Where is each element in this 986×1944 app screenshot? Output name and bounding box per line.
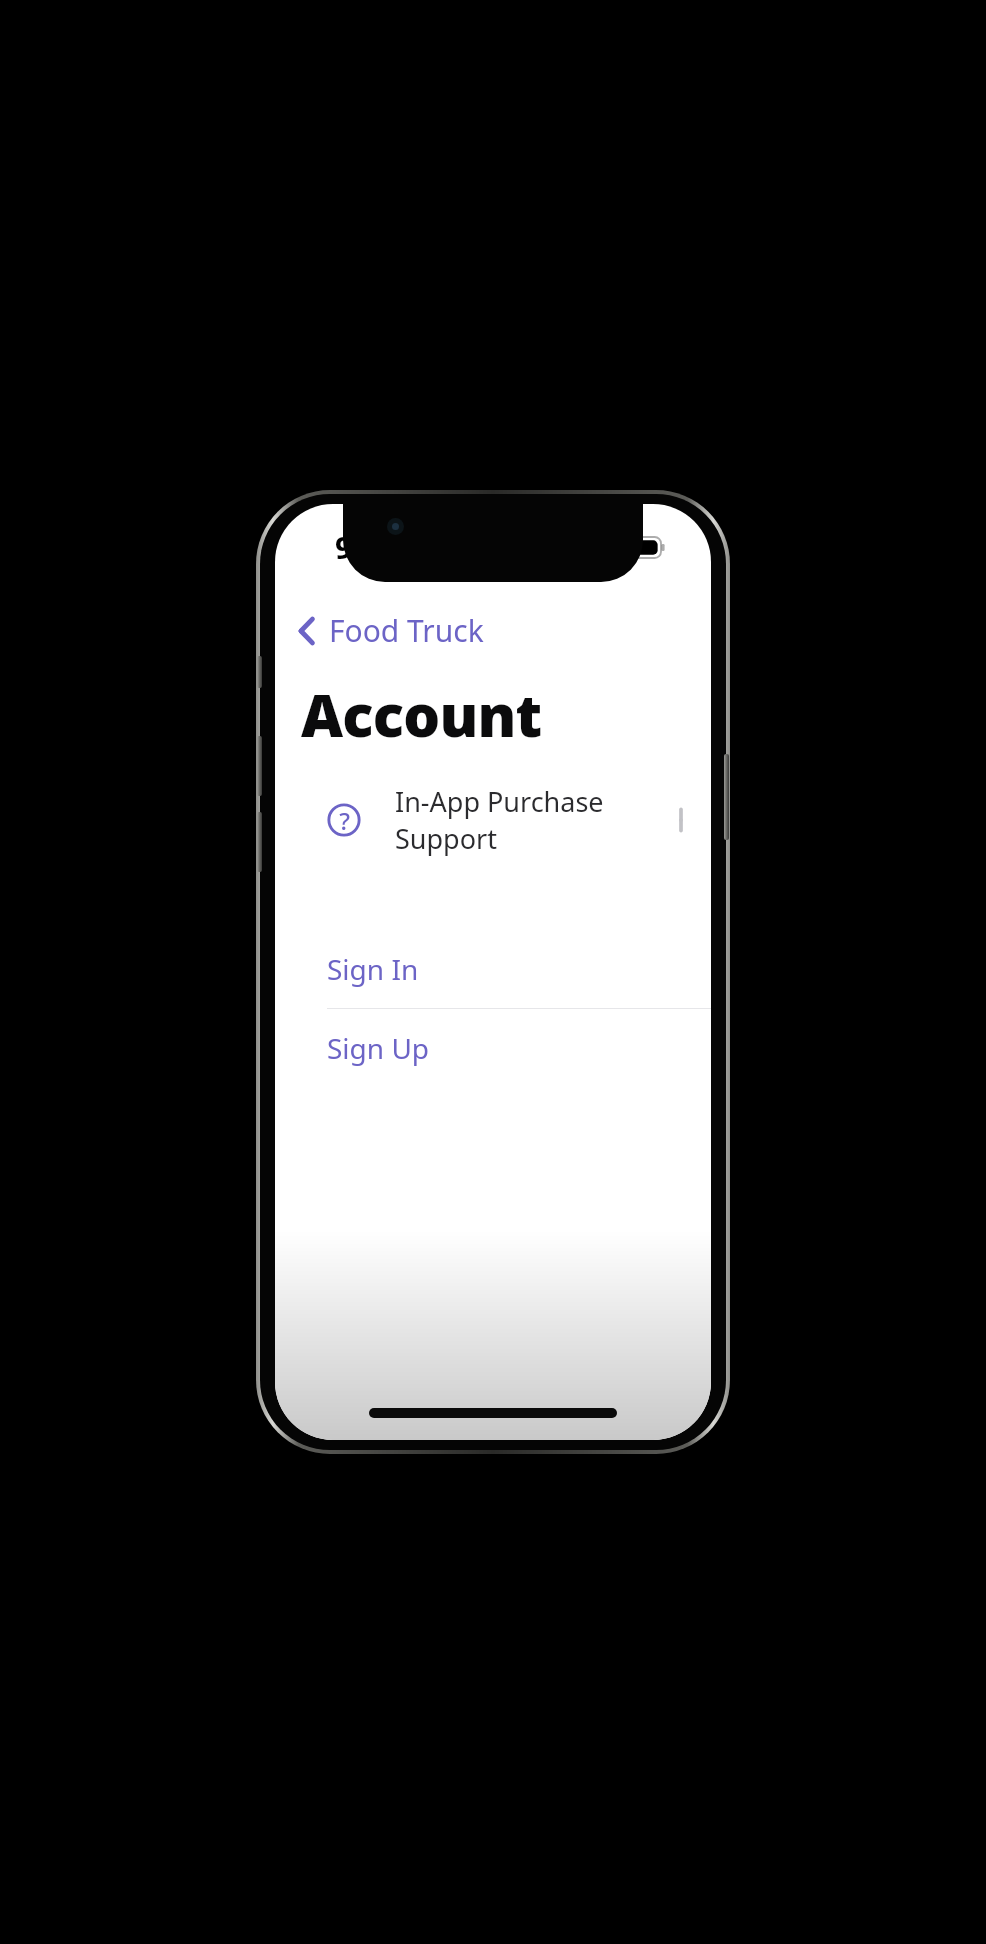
staticText: Sign In [327,950,419,988]
staticText: ? [339,804,350,837]
staticText: Sign Up [327,1029,430,1067]
staticText: 9:41 [335,526,397,568]
button[interactable]: Sign In [275,930,711,1008]
button[interactable]: ? [275,774,711,866]
staticText: In-App Purchase Support [395,783,681,857]
button[interactable]: Food Truck [293,604,500,657]
staticText: Food Truck [329,610,484,651]
button[interactable]: Sign Up [275,1009,711,1087]
staticText: Account [301,675,542,754]
